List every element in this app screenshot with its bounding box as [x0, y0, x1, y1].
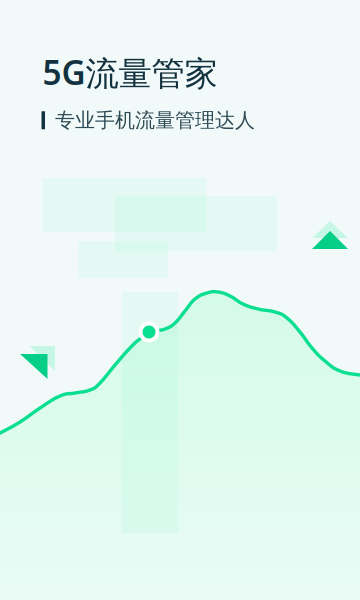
staticText: 5G流量管家	[42, 50, 217, 94]
staticText: 专业手机流量管理达人	[55, 108, 255, 133]
